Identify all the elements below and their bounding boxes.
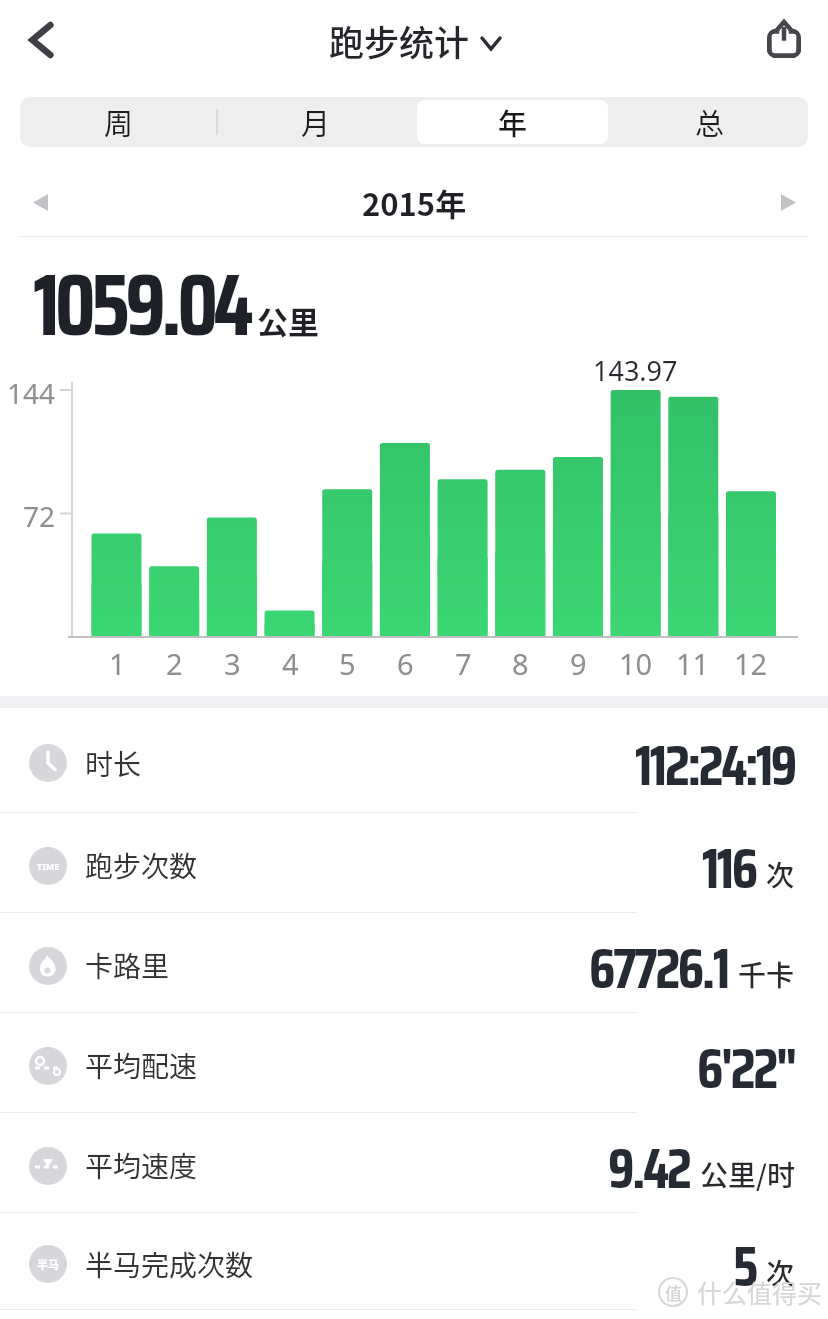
button[interactable]: 月	[220, 100, 411, 144]
staticText: 5	[733, 1222, 756, 1310]
staticText: 公里/时	[700, 1154, 795, 1195]
staticText: 2015年	[362, 180, 467, 225]
staticText: 67726.1	[589, 924, 728, 1012]
staticText: 周	[104, 101, 134, 143]
staticText: 8	[512, 644, 529, 683]
staticText: 5	[339, 644, 356, 683]
staticText: 月	[301, 101, 331, 143]
staticText: 半马	[37, 1256, 59, 1272]
button[interactable]	[762, 18, 806, 62]
staticText: 次	[766, 854, 795, 895]
staticText: 跑步统计	[329, 15, 470, 66]
button[interactable]: 卡路里	[0, 913, 828, 1013]
staticText: 卡路里	[85, 945, 170, 986]
staticText: 11	[676, 644, 710, 683]
button[interactable]	[22, 184, 58, 220]
staticText: 112:24:19	[635, 721, 795, 809]
button[interactable]: 半马	[0, 1213, 828, 1310]
staticText: 跑步次数	[85, 845, 198, 886]
staticText: 年	[498, 101, 528, 143]
staticText: 9.42	[608, 1124, 690, 1212]
staticText: 千卡	[738, 954, 795, 995]
staticText: 2	[166, 644, 183, 683]
staticText: 平均速度	[85, 1145, 198, 1186]
staticText: 值	[665, 1280, 682, 1305]
button[interactable]: 跑步统计	[329, 15, 500, 66]
button[interactable]: 年	[417, 100, 608, 144]
button[interactable]: 时长	[0, 708, 828, 813]
button[interactable]	[20, 18, 64, 62]
staticText: 10	[619, 644, 653, 683]
staticText: 143.97	[593, 352, 678, 389]
staticText: 6'22"	[697, 1024, 795, 1112]
staticText: 1	[109, 644, 126, 683]
button[interactable]: 平均速度	[0, 1113, 828, 1213]
staticText: 总	[695, 101, 725, 143]
staticText: 144	[7, 374, 56, 412]
staticText: 4	[282, 644, 299, 683]
staticText: 次	[766, 1252, 795, 1293]
button[interactable]: TIME	[0, 813, 828, 913]
button[interactable]: 总	[614, 100, 805, 144]
staticText: 9	[570, 644, 587, 683]
staticText: 平均配速	[85, 1045, 198, 1086]
button[interactable]	[770, 184, 806, 220]
staticText: 6	[397, 644, 414, 683]
staticText: 3	[224, 644, 241, 683]
staticText: TIME	[37, 860, 60, 872]
staticText: 1059.04	[33, 237, 249, 372]
staticText: 什么值得买	[697, 1274, 823, 1310]
staticText: 72	[23, 497, 56, 535]
staticText: 半马完成次数	[85, 1244, 254, 1285]
button[interactable]: 周	[23, 100, 214, 144]
staticText: 116	[702, 824, 756, 912]
staticText: 12	[734, 644, 768, 683]
button[interactable]: 平均配速	[0, 1013, 828, 1113]
staticText: 时长	[85, 743, 142, 784]
staticText: 7	[455, 644, 472, 683]
staticText: 公里	[257, 298, 319, 343]
